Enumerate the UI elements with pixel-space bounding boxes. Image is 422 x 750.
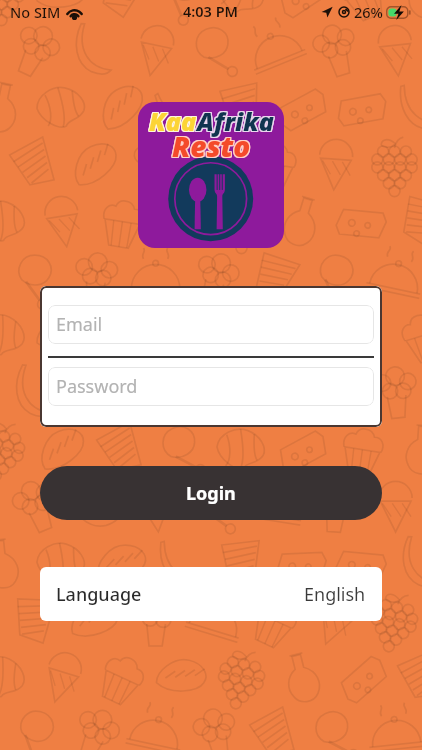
staticText: Resto: [173, 126, 252, 164]
staticText: Resto: [172, 127, 251, 165]
staticText: Kaa: [149, 103, 197, 137]
button[interactable]: Language: [40, 567, 382, 621]
staticText: 4:03 PM: [183, 1, 239, 21]
staticText: Kaa: [148, 105, 196, 139]
staticText: Resto: [172, 126, 251, 164]
staticText: Resto: [171, 127, 250, 165]
staticText: Kaa: [149, 104, 197, 138]
button[interactable]: Password: [48, 367, 374, 406]
staticText: Kaa: [150, 104, 198, 138]
staticText: Kaa: [149, 105, 197, 139]
staticText: Kaa: [148, 103, 196, 137]
staticText: Afrika: [198, 104, 275, 138]
staticText: Afrika: [198, 103, 275, 137]
staticText: Afrika: [197, 103, 274, 137]
staticText: Afrika: [197, 105, 274, 139]
other: Battery 26 percent charging: [386, 6, 411, 19]
staticText: Password: [56, 374, 138, 399]
button[interactable]: Login: [40, 466, 382, 520]
staticText: Kaa: [150, 103, 198, 137]
staticText: Afrika: [197, 104, 274, 138]
staticText: Resto: [171, 126, 250, 164]
staticText: Language: [56, 582, 142, 607]
staticText: Resto: [173, 128, 252, 166]
staticText: Afrika: [196, 105, 273, 139]
staticText: Resto: [171, 128, 250, 166]
staticText: 26%: [354, 2, 383, 22]
staticText: Afrika: [196, 104, 273, 138]
staticText: Kaa: [148, 104, 196, 138]
staticText: Resto: [172, 128, 251, 166]
other: Location: [321, 6, 333, 18]
staticText: Login: [186, 481, 236, 506]
staticText: Afrika: [196, 103, 273, 137]
other: Rotation lock: [338, 6, 350, 18]
staticText: Afrika: [198, 105, 275, 139]
staticText: English: [304, 582, 366, 607]
button[interactable]: Email: [48, 305, 374, 344]
staticText: No SIM: [10, 2, 61, 22]
staticText: Kaa: [150, 105, 198, 139]
staticText: Resto: [173, 127, 252, 165]
staticText: Email: [56, 312, 103, 337]
